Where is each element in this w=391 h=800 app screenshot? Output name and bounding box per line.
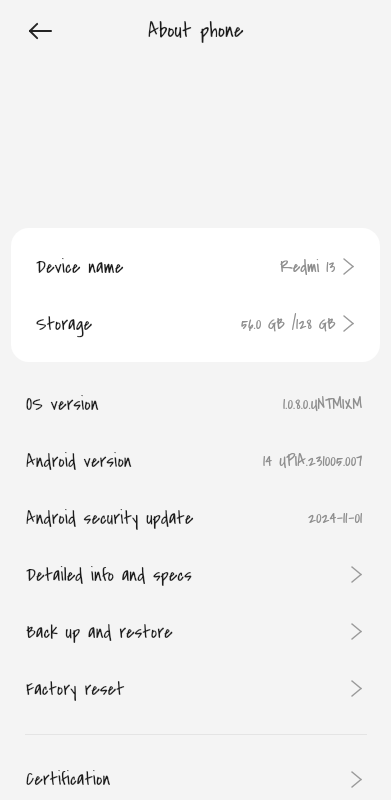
button[interactable]: OS version	[0, 375, 391, 432]
staticText: 1.0.8.0.UNTMIXM	[283, 392, 363, 415]
staticText: Back up and restore	[26, 619, 173, 645]
button[interactable]: Device name	[11, 238, 380, 295]
button[interactable]: Detailed info and specs	[0, 546, 391, 603]
button[interactable]: Android security update	[0, 489, 391, 546]
staticText: 14 UPIA.231005.007	[263, 449, 363, 472]
staticText: Device name	[36, 254, 124, 280]
staticText: OS version	[26, 391, 99, 417]
staticText: Android version	[26, 448, 132, 474]
button[interactable]: Certification	[0, 758, 391, 800]
button[interactable]: Factory reset	[0, 660, 391, 717]
staticText: About phone	[148, 16, 244, 46]
staticText: 2024-11-01	[308, 506, 363, 529]
staticText: Certification	[26, 766, 111, 792]
button[interactable]: Back up and restore	[0, 603, 391, 660]
button[interactable]: Android version	[0, 432, 391, 489]
staticText: Factory reset	[26, 676, 125, 702]
staticText: 56.0 GB /128 GB	[241, 312, 336, 335]
button[interactable]: Back	[21, 12, 59, 50]
button[interactable]: Storage	[11, 295, 380, 352]
staticText: Detailed info and specs	[26, 562, 192, 588]
staticText: Storage	[36, 311, 93, 337]
staticText: Redmi 13	[280, 255, 336, 278]
staticText: Android security update	[26, 505, 194, 531]
